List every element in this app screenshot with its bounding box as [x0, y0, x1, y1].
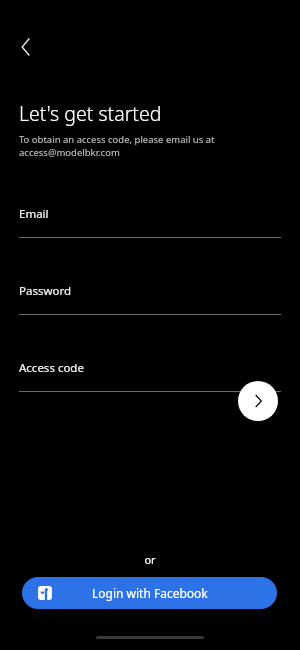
- staticText: Access code: [19, 360, 84, 376]
- button[interactable]: Login with Facebook: [22, 577, 277, 609]
- staticText: Password: [19, 283, 72, 299]
- button[interactable]: Access code: [0, 360, 300, 392]
- staticText: Email: [19, 206, 49, 222]
- button[interactable]: Email: [0, 206, 300, 238]
- button[interactable]: Back: [10, 31, 42, 63]
- staticText: Login with Facebook: [92, 585, 208, 601]
- button[interactable]: Next: [238, 381, 278, 421]
- staticText: or: [144, 552, 156, 567]
- staticText: Let's get started: [19, 100, 162, 127]
- button[interactable]: Password: [0, 283, 300, 315]
- staticText: To obtain an access code, please email u…: [19, 133, 215, 159]
